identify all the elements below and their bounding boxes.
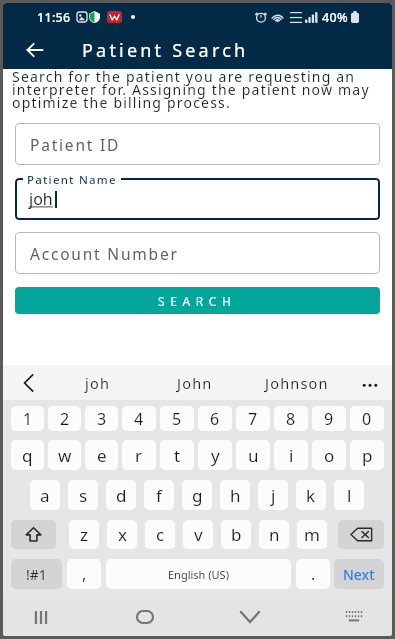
button[interactable]: l <box>334 480 364 510</box>
button[interactable]: j <box>258 480 288 510</box>
staticText: 3 <box>97 408 107 430</box>
button[interactable]: x <box>107 520 137 549</box>
staticText: 7 <box>248 408 258 430</box>
button[interactable]: Back <box>226 598 274 636</box>
button[interactable]: SEARCH <box>15 287 380 314</box>
button[interactable]: Previous suggestions <box>14 370 40 396</box>
button[interactable]: Next <box>334 559 384 589</box>
staticText: g <box>192 484 203 507</box>
button[interactable]: z <box>69 520 99 549</box>
button[interactable]: English (US) <box>106 559 291 589</box>
button[interactable]: Account Number <box>15 232 380 274</box>
staticText: i <box>289 444 294 467</box>
staticText: 5 <box>172 408 182 430</box>
staticText: a <box>40 484 50 507</box>
staticText: c <box>156 523 165 546</box>
button[interactable]: !#1 <box>11 559 62 589</box>
staticText: 11:56 <box>37 9 71 26</box>
staticText: Patient ID <box>30 134 121 155</box>
button[interactable]: b <box>221 520 251 549</box>
staticText: !#1 <box>26 565 47 584</box>
button[interactable]: 0 <box>350 406 384 431</box>
button[interactable]: r <box>122 440 156 470</box>
button[interactable]: More <box>358 371 382 395</box>
staticText: , <box>82 563 87 585</box>
button[interactable]: Johnson <box>249 366 345 400</box>
button[interactable]: u <box>236 440 270 470</box>
button[interactable]: h <box>220 480 250 510</box>
button[interactable]: g <box>182 480 212 510</box>
button[interactable]: 8 <box>274 406 308 431</box>
staticText: n <box>269 523 280 546</box>
staticText: Next <box>343 565 375 584</box>
staticText: Patient Search <box>82 38 249 63</box>
staticText: English (US) <box>168 567 229 582</box>
button[interactable]: Home <box>121 598 169 636</box>
button[interactable]: John <box>151 366 239 400</box>
button[interactable]: y <box>198 440 232 470</box>
button[interactable]: v <box>183 520 213 549</box>
button[interactable]: 6 <box>198 406 232 431</box>
staticText: Account Number <box>30 243 179 264</box>
staticText: Search for the patient you are requestin… <box>12 67 381 112</box>
staticText: 0 <box>362 408 372 430</box>
button[interactable]: q <box>11 440 44 470</box>
button[interactable]: s <box>68 480 98 510</box>
button[interactable]: Shift <box>11 520 56 549</box>
button[interactable]: . <box>296 559 330 589</box>
button[interactable]: n <box>259 520 289 549</box>
staticText: 40% <box>322 9 348 26</box>
staticText: t <box>174 444 181 467</box>
staticText: p <box>362 444 373 467</box>
button[interactable]: m <box>297 520 327 549</box>
staticText: 2 <box>60 408 70 430</box>
staticText: k <box>306 484 316 507</box>
staticText: w <box>58 444 72 467</box>
button[interactable]: Patient ID <box>15 123 380 165</box>
button[interactable]: 4 <box>122 406 156 431</box>
button[interactable]: 5 <box>160 406 194 431</box>
staticText: u <box>248 444 259 467</box>
button[interactable]: Backspace <box>338 520 384 549</box>
staticText: v <box>194 523 203 546</box>
button[interactable]: o <box>312 440 346 470</box>
button[interactable]: f <box>144 480 174 510</box>
button[interactable]: , <box>67 559 101 589</box>
staticText: s <box>79 484 88 507</box>
staticText: joh <box>29 188 53 210</box>
button[interactable]: Back <box>21 36 49 64</box>
button[interactable]: p <box>350 440 384 470</box>
button[interactable]: Recents <box>17 598 65 636</box>
staticText: joh <box>85 373 111 393</box>
staticText: f <box>156 484 162 507</box>
staticText: l <box>347 484 352 507</box>
staticText: d <box>116 484 127 507</box>
button[interactable]: t <box>160 440 194 470</box>
staticText: 6 <box>210 408 220 430</box>
button[interactable]: 1 <box>11 406 44 431</box>
staticText: m <box>304 523 320 546</box>
staticText: b <box>231 523 242 546</box>
button[interactable]: e <box>85 440 118 470</box>
staticText: x <box>118 523 127 546</box>
button[interactable]: a <box>30 480 60 510</box>
staticText: 8 <box>286 408 296 430</box>
button[interactable]: joh <box>15 178 380 220</box>
staticText: Patient Name <box>27 172 117 188</box>
button[interactable]: 7 <box>236 406 270 431</box>
staticText: SEARCH <box>158 293 237 309</box>
button[interactable]: 3 <box>85 406 118 431</box>
button[interactable]: Hide keyboard <box>330 598 378 636</box>
button[interactable]: joh <box>54 366 142 400</box>
staticText: r <box>135 444 143 467</box>
button[interactable]: 2 <box>48 406 81 431</box>
staticText: o <box>324 444 335 467</box>
button[interactable]: d <box>106 480 136 510</box>
button[interactable]: k <box>296 480 326 510</box>
button[interactable]: i <box>274 440 308 470</box>
staticText: h <box>230 484 241 507</box>
button[interactable]: 9 <box>312 406 346 431</box>
staticText: e <box>97 444 107 467</box>
button[interactable]: w <box>48 440 81 470</box>
button[interactable]: c <box>145 520 175 549</box>
